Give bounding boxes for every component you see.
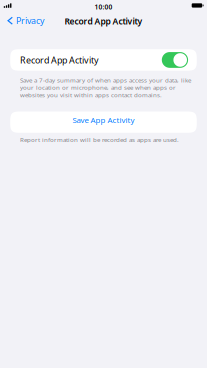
staticText: Save App Activity (72, 115, 134, 125)
staticText: Report information will be recorded as a… (20, 135, 179, 144)
button[interactable]: Privacy (5, 13, 47, 28)
button[interactable]: Record App Activity (10, 49, 197, 71)
staticText: Privacy (16, 15, 44, 27)
staticText: 10:00 (94, 2, 112, 11)
staticText: Save a 7-day summary of when apps access… (20, 76, 191, 99)
staticText: Record App Activity (20, 54, 99, 66)
button[interactable]: Save App Activity (10, 111, 197, 133)
staticText: Record App Activity (64, 15, 142, 27)
